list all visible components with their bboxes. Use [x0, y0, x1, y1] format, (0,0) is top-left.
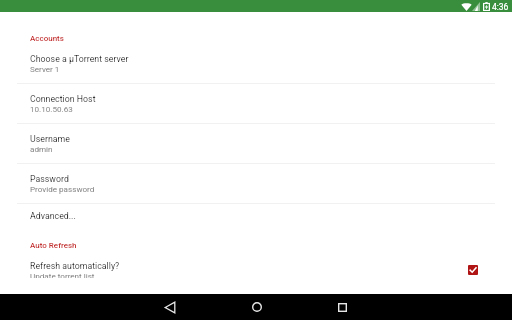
staticText: 4:36: [492, 2, 509, 12]
button[interactable]: Refresh automatically, checked: [468, 265, 478, 275]
staticText: Advanced...: [30, 211, 76, 221]
staticText: Refresh automatically?: [30, 261, 120, 271]
staticText: 10.10.50.63: [30, 104, 73, 113]
button[interactable]: Refresh automatically?: [0, 260, 512, 278]
button[interactable]: Connection Host: [0, 84, 512, 123]
button[interactable]: Back: [147, 294, 192, 320]
staticText: Choose a µTorrent server: [30, 54, 129, 64]
staticText: Auto Refresh: [30, 241, 77, 250]
staticText: Password: [30, 174, 69, 184]
staticText: Username: [30, 134, 70, 144]
staticText: Accounts: [30, 34, 64, 43]
button[interactable]: Password: [0, 164, 512, 203]
staticText: Update torrent list: [30, 271, 95, 278]
button[interactable]: Choose a µTorrent server: [0, 53, 512, 83]
staticText: Provide password: [30, 184, 95, 193]
staticText: Connection Host: [30, 94, 96, 104]
button[interactable]: Recent apps: [320, 294, 365, 320]
staticText: admin: [30, 144, 53, 153]
button[interactable]: Home: [234, 294, 279, 320]
staticText: Server 1: [30, 64, 60, 73]
button[interactable]: Advanced...: [0, 204, 512, 232]
button[interactable]: Username: [0, 124, 512, 163]
